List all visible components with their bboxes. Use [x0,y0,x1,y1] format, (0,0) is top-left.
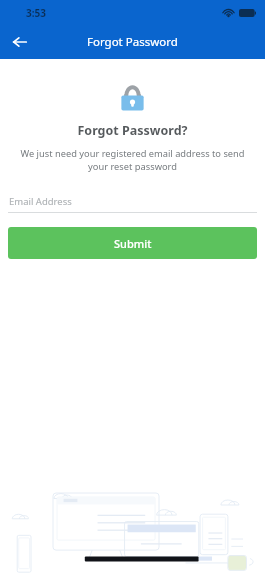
staticText: 3:53 [26,6,46,20]
button[interactable]: Email Address [8,190,257,213]
staticText: Email Address [9,195,72,208]
staticText: Submit [114,236,152,251]
staticText: Forgot Password? [0,122,265,139]
button[interactable]: Submit [8,227,257,259]
staticText: We just need your registered email addre… [11,147,254,173]
button[interactable]: Back [7,29,33,55]
staticText: Forgot Password [87,34,178,50]
